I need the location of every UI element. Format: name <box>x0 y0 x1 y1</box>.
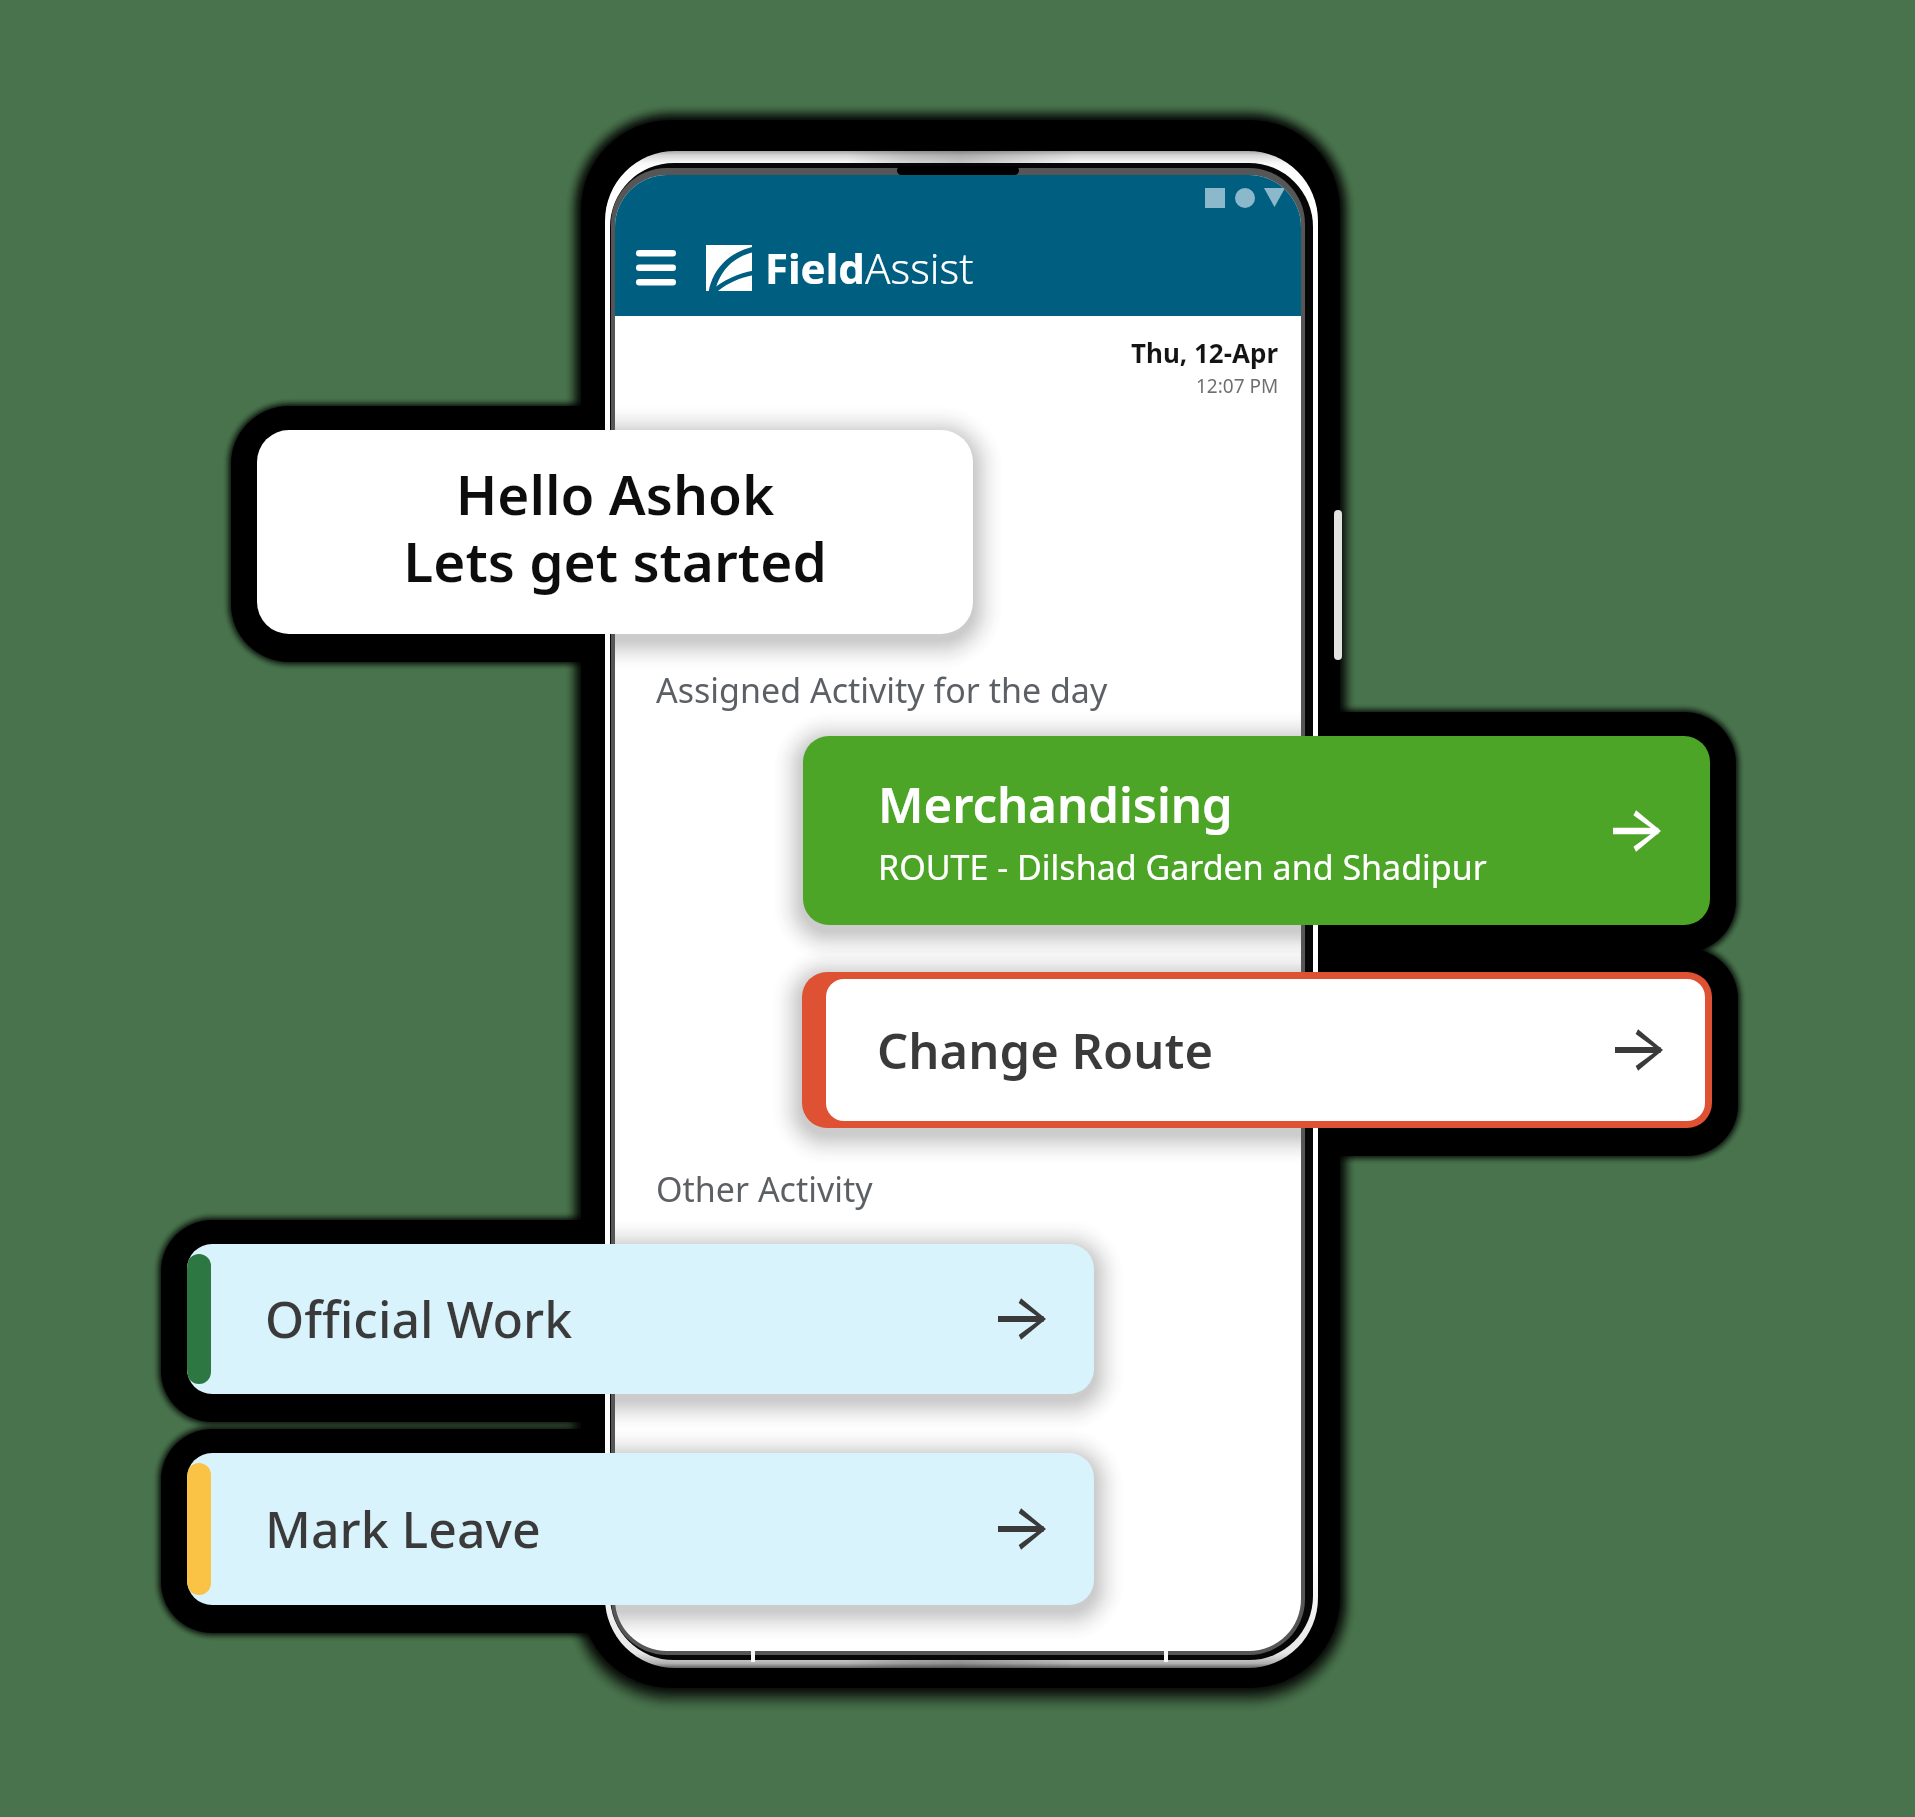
button[interactable]: Change Route <box>802 972 1712 1128</box>
staticText: Other Activity <box>656 1166 873 1212</box>
staticText: Thu, 12-Apr <box>1131 335 1279 370</box>
button[interactable]: Hello Ashok Lets get started <box>257 430 973 634</box>
staticText: Change Route <box>877 1017 1615 1084</box>
staticText: Merchandising <box>878 771 1233 838</box>
staticText: 12:07 PM <box>1196 373 1279 399</box>
staticText: Official Work <box>265 1285 998 1353</box>
staticText: Mark Leave <box>265 1495 998 1563</box>
staticText: ROUTE - Dilshad Garden and Shadipur <box>878 844 1487 890</box>
button[interactable]: Open navigation menu <box>636 250 678 286</box>
staticText: Field <box>765 239 865 296</box>
staticText: Hello Ashok Lets get started <box>403 456 827 598</box>
staticText: Assigned Activity for the day <box>656 667 1108 713</box>
button[interactable]: Merchandising <box>803 736 1710 925</box>
button[interactable]: Official Work <box>187 1244 1094 1394</box>
button[interactable]: Mark Leave <box>187 1453 1094 1605</box>
staticText: Assist <box>865 239 974 296</box>
